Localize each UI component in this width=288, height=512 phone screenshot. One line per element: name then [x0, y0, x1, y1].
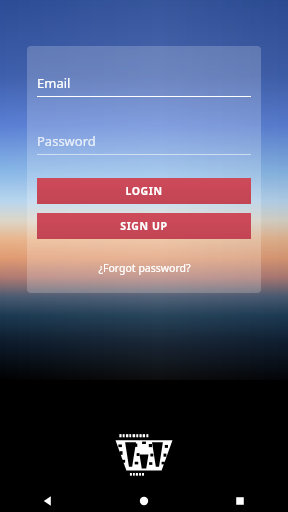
button[interactable]: Password	[37, 132, 251, 155]
button[interactable]: ¿Forgot password?	[27, 258, 261, 278]
staticText: Password	[37, 132, 96, 150]
button[interactable]: Email	[37, 74, 251, 97]
button[interactable]: LOGIN	[37, 178, 251, 204]
staticText: SIGN UP	[120, 219, 168, 233]
staticText: ¿Forgot password?	[98, 261, 191, 275]
staticText: LOGIN	[125, 184, 163, 198]
button[interactable]: Recent apps	[192, 490, 288, 512]
button[interactable]: SIGN UP	[37, 213, 251, 239]
other: Enduro Adventures logo	[112, 432, 176, 480]
button[interactable]: Home	[96, 490, 192, 512]
button[interactable]: Back	[0, 490, 96, 512]
staticText: Email	[37, 74, 71, 92]
